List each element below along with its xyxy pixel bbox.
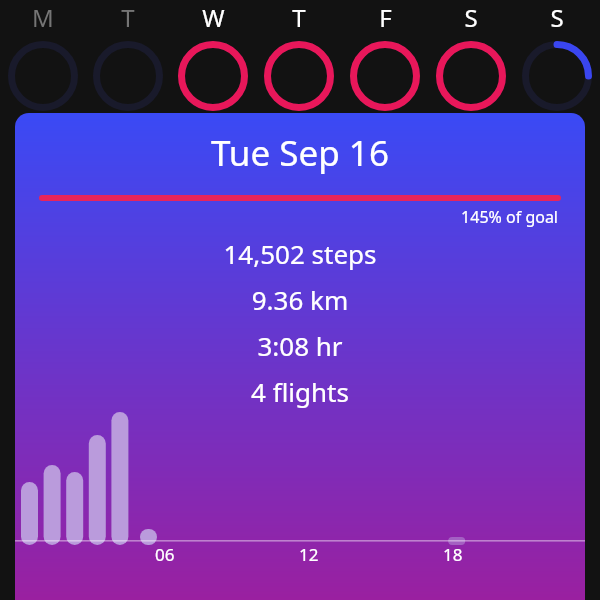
button[interactable]: Day S xyxy=(428,0,514,113)
button[interactable]: Day W xyxy=(170,0,256,113)
staticText: T xyxy=(121,1,135,34)
staticText: 14,502 steps xyxy=(15,236,585,271)
staticText: F xyxy=(379,1,392,34)
staticText: 3:08 hr xyxy=(15,328,585,363)
staticText: 06 xyxy=(155,543,175,566)
button[interactable]: Tue Sep 16 xyxy=(15,113,585,600)
staticText: S xyxy=(464,1,478,34)
staticText: 4 flights xyxy=(15,374,585,409)
staticText: 12 xyxy=(299,543,319,566)
button[interactable]: Day T xyxy=(256,0,342,113)
staticText: 18 xyxy=(443,543,463,566)
button[interactable]: Day F xyxy=(342,0,428,113)
button[interactable]: Day M xyxy=(0,0,85,113)
staticText: 9.36 km xyxy=(15,282,585,317)
staticText: M xyxy=(32,1,54,34)
staticText: T xyxy=(292,1,306,34)
staticText: Tue Sep 16 xyxy=(15,129,585,177)
staticText: S xyxy=(550,1,564,34)
staticText: W xyxy=(202,1,225,34)
button[interactable]: Day T xyxy=(85,0,170,113)
staticText: 145% of goal xyxy=(15,206,558,228)
button[interactable]: Day S xyxy=(514,0,600,113)
